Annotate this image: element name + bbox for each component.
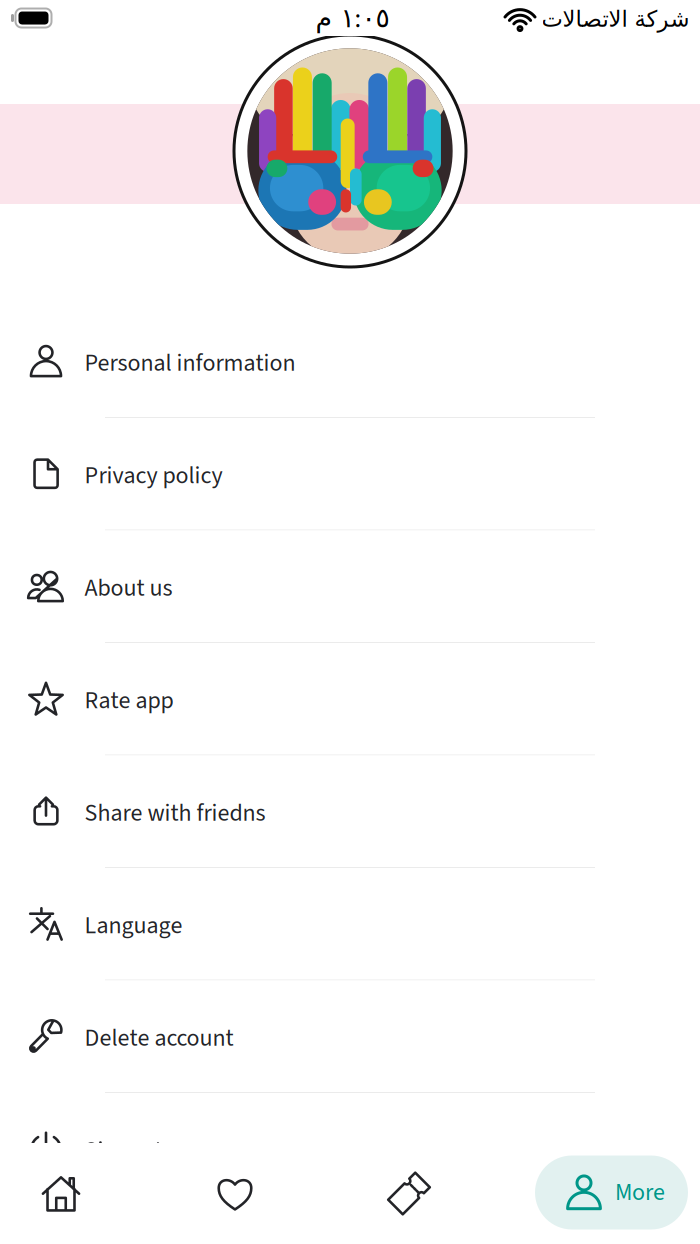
- staticText: Personal information: [84, 346, 295, 380]
- staticText: ١:٠٥ م: [315, 0, 389, 38]
- button[interactable]: About us: [0, 530, 700, 642]
- staticText: Signout: [84, 1134, 162, 1168]
- staticText: About us: [84, 571, 172, 605]
- button[interactable]: More: [535, 1155, 688, 1229]
- staticText: Rate app: [84, 684, 173, 718]
- button[interactable]: Personal information: [0, 305, 700, 417]
- button[interactable]: Delete account: [0, 980, 700, 1092]
- staticText: Language: [84, 909, 182, 943]
- button[interactable]: Rate app: [0, 643, 700, 754]
- button[interactable]: Share with friedns: [0, 755, 700, 867]
- button[interactable]: Favourites: [180, 1143, 290, 1244]
- staticText: Privacy policy: [84, 459, 222, 493]
- staticText: Share with friedns: [84, 796, 265, 830]
- staticText: More: [615, 1175, 665, 1210]
- button[interactable]: Home: [6, 1143, 116, 1244]
- button[interactable]: Privacy policy: [0, 418, 700, 529]
- button[interactable]: Tickets: [354, 1143, 464, 1244]
- staticText: شركة الاتصالات: [541, 6, 689, 32]
- button[interactable]: Language: [0, 868, 700, 979]
- staticText: Delete account: [84, 1021, 233, 1055]
- button[interactable]: Signout: [0, 1093, 700, 1204]
